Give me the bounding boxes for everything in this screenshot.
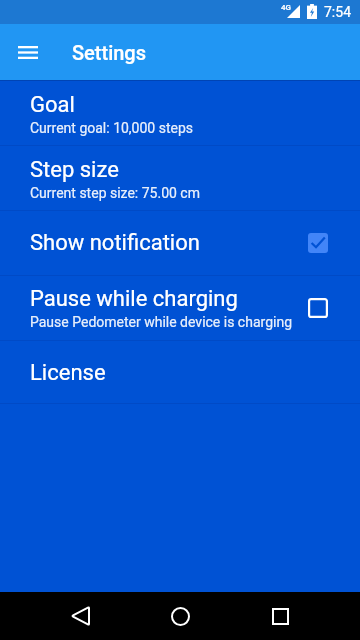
staticText: 4G <box>281 3 291 12</box>
staticText: Step size <box>30 157 119 183</box>
button[interactable]: Open navigation drawer <box>8 32 48 72</box>
staticText: Goal <box>30 92 75 118</box>
button[interactable]: Pause while charging <box>0 276 360 340</box>
staticText: Current goal: 10,000 steps <box>30 120 194 136</box>
button[interactable]: Goal <box>0 81 360 145</box>
button[interactable]: Show notification <box>0 211 360 275</box>
button[interactable]: Back <box>56 592 104 640</box>
staticText: 7:54 <box>324 4 351 20</box>
button[interactable]: Step size <box>0 146 360 210</box>
staticText: Pause while charging <box>30 286 238 312</box>
button[interactable]: Home <box>156 592 204 640</box>
staticText: Current step size: 75.00 cm <box>30 185 200 201</box>
staticText: Show notification <box>30 230 200 256</box>
button[interactable]: Recent apps <box>256 592 304 640</box>
staticText: License <box>30 360 106 386</box>
button[interactable]: License <box>0 341 360 403</box>
staticText: Settings <box>72 41 147 64</box>
staticText: Pause Pedometer while device is charging <box>30 314 292 330</box>
